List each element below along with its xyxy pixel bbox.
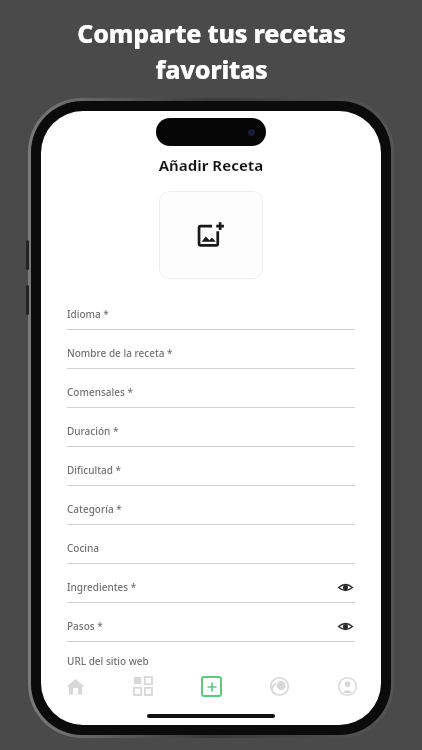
button[interactable]: Categoría * [67,494,355,533]
staticText: Duración * [67,424,355,438]
staticText: Pasos * [67,619,335,633]
button[interactable]: Perfil [313,664,381,708]
staticText: URL del sitio web [67,654,149,668]
staticText: Idioma * [67,307,355,321]
button[interactable]: Inicio [41,664,109,708]
staticText: Ingredientes * [67,580,335,594]
button[interactable]: Pasos * [67,611,355,650]
staticText: Dificultad * [67,463,355,477]
staticText: Categoría * [67,502,355,516]
button[interactable]: Nombre de la receta * [67,338,355,377]
button[interactable]: Cocina [67,533,355,572]
staticText: Añadir Receta [41,155,381,175]
button[interactable]: Dificultad * [67,455,355,494]
staticText: Nombre de la receta * [67,346,355,360]
button[interactable]: Idioma * [67,299,355,338]
staticText: Comparte tus recetas [77,16,346,50]
staticText: Comensales * [67,385,355,399]
button[interactable] [159,191,263,279]
staticText: favoritas [155,52,268,86]
button[interactable]: Mostrar [335,616,355,636]
button[interactable]: Comensales * [67,377,355,416]
button[interactable]: Duración * [67,416,355,455]
button[interactable]: Añadir [177,664,245,708]
button[interactable]: Ingredientes * [67,572,355,611]
button[interactable]: Explorar [245,664,313,708]
button[interactable]: Categorías [109,664,177,708]
button[interactable]: Mostrar [335,577,355,597]
button[interactable]: URL del sitio web [67,650,355,672]
staticText: Cocina [67,541,355,555]
